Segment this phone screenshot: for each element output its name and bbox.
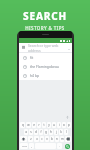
button[interactable]: t xyxy=(42,122,46,128)
staticText: c xyxy=(41,137,43,141)
staticText: k xyxy=(60,130,62,134)
staticText: l xyxy=(66,130,67,134)
button[interactable]: v xyxy=(45,136,49,142)
staticText: a xyxy=(25,130,27,134)
staticText: u xyxy=(53,123,55,127)
button[interactable]: d xyxy=(34,129,38,135)
staticText: h4 bp xyxy=(30,73,40,78)
button[interactable]: u xyxy=(52,122,56,128)
button[interactable]: . xyxy=(57,143,62,149)
staticText: s xyxy=(30,130,32,134)
staticText: HISTORY & TIPS xyxy=(25,25,65,31)
button[interactable]: y xyxy=(47,122,51,128)
button[interactable]: n xyxy=(55,136,59,142)
button[interactable]: f xyxy=(39,129,43,135)
button[interactable]: Backspace xyxy=(65,136,71,142)
button[interactable]: i xyxy=(57,122,61,128)
button[interactable]: h4 bp xyxy=(19,71,72,80)
button[interactable]: b xyxy=(50,136,54,142)
staticText: b xyxy=(51,137,53,141)
button[interactable]: z xyxy=(28,136,33,142)
staticText: Search or type web address xyxy=(28,43,69,52)
button[interactable]: fit xyxy=(19,53,72,62)
staticText: x xyxy=(36,137,38,141)
button[interactable]: Search xyxy=(63,143,71,149)
other: Scroll up xyxy=(66,116,69,119)
staticText: w xyxy=(27,123,30,127)
button[interactable]: e xyxy=(32,122,36,128)
staticText: m xyxy=(61,137,64,141)
staticText: i xyxy=(59,123,60,127)
button[interactable]: h xyxy=(49,129,53,135)
staticText: the Flamingobeau xyxy=(30,64,59,69)
button[interactable]: Shift xyxy=(20,136,27,142)
button[interactable]: j xyxy=(54,129,58,135)
staticText: r xyxy=(38,123,40,127)
button[interactable]: l xyxy=(64,129,68,135)
other: Menu xyxy=(22,46,25,49)
staticText: e xyxy=(33,123,35,127)
staticText: p xyxy=(68,123,70,127)
staticText: h xyxy=(50,130,52,134)
staticText: j xyxy=(56,130,57,134)
staticText: SEARCH xyxy=(23,9,67,23)
staticText: z xyxy=(30,137,32,141)
button[interactable]: Menu xyxy=(19,43,72,52)
button[interactable]: r xyxy=(37,122,41,128)
staticText: fit xyxy=(30,55,34,60)
button[interactable]: x xyxy=(34,136,39,142)
button[interactable]: g xyxy=(44,129,48,135)
staticText: v xyxy=(46,137,48,141)
staticText: q xyxy=(22,123,24,127)
staticText: t xyxy=(43,123,45,127)
button[interactable]: c xyxy=(40,136,44,142)
staticText: g xyxy=(45,130,47,134)
staticText: . xyxy=(59,144,60,148)
button[interactable]: o xyxy=(62,122,66,128)
staticText: f xyxy=(40,130,42,134)
button[interactable]: a xyxy=(24,129,28,135)
button[interactable]: , xyxy=(29,143,34,149)
button[interactable]: the Flamingobeau xyxy=(19,62,72,71)
button[interactable]: m xyxy=(60,136,64,142)
staticText: , xyxy=(31,144,32,148)
button[interactable]: q xyxy=(20,122,25,128)
button[interactable]: ?123 xyxy=(20,143,28,149)
staticText: ?123 xyxy=(22,145,27,148)
button[interactable]: k xyxy=(59,129,63,135)
staticText: y xyxy=(48,123,50,127)
button[interactable]: s xyxy=(29,129,33,135)
button[interactable]: w xyxy=(26,122,31,128)
staticText: o xyxy=(63,123,65,127)
staticText: d xyxy=(35,130,37,134)
button[interactable]: p xyxy=(67,122,71,128)
staticText: n xyxy=(56,137,58,141)
